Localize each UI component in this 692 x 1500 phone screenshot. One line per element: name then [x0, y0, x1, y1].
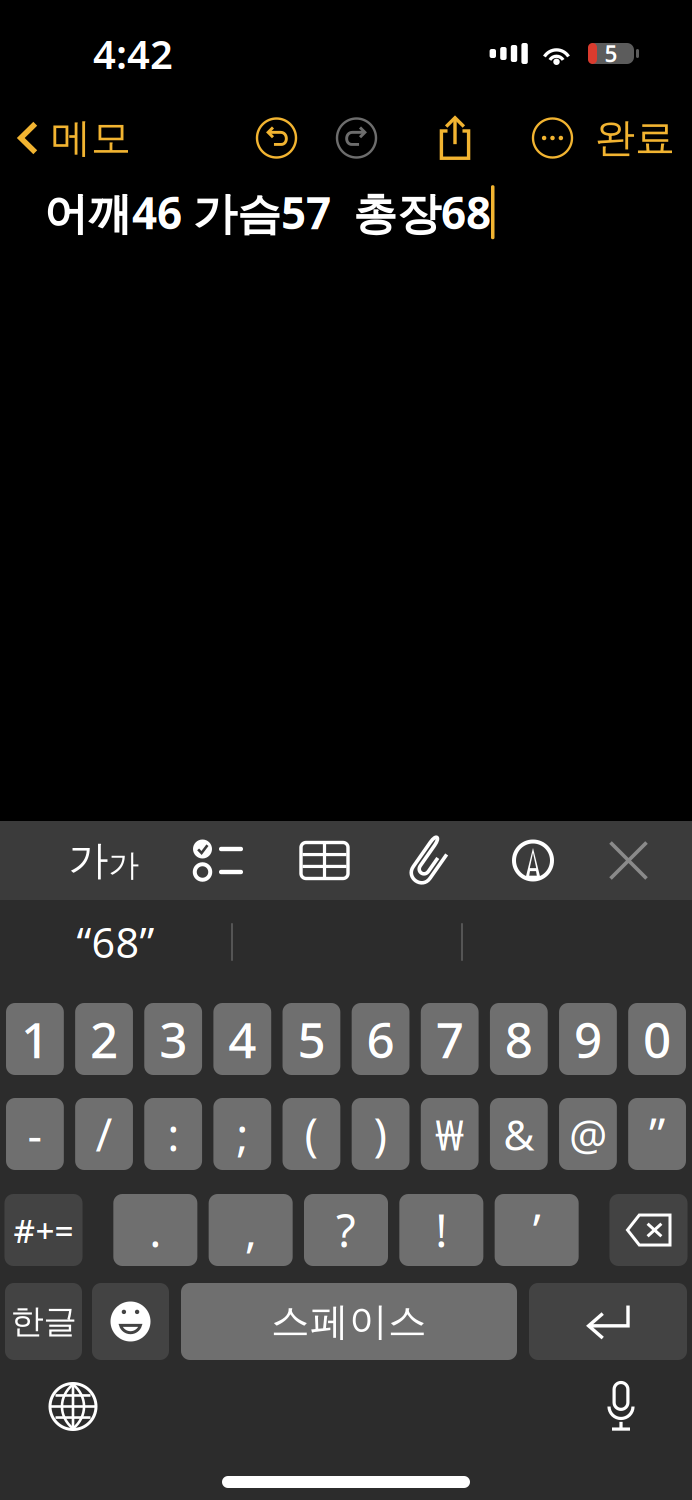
- staticText: 완료: [595, 113, 675, 162]
- button[interactable]: ’: [495, 1194, 579, 1266]
- staticText: 2: [90, 1006, 118, 1072]
- button[interactable]: @: [559, 1098, 617, 1170]
- button[interactable]: 한글: [5, 1283, 82, 1360]
- staticText: -: [27, 1104, 42, 1164]
- button[interactable]: 1: [6, 1003, 64, 1075]
- staticText: 1: [21, 1006, 49, 1072]
- staticText: 7: [436, 1006, 464, 1072]
- button[interactable]: &: [490, 1098, 548, 1170]
- button[interactable]: ,: [209, 1194, 293, 1266]
- staticText: 6: [367, 1006, 395, 1072]
- button[interactable]: .: [113, 1194, 197, 1266]
- button[interactable]: :: [144, 1098, 202, 1170]
- button[interactable]: Redo: [313, 101, 399, 175]
- button[interactable]: Undo: [239, 101, 313, 175]
- staticText: 0: [643, 1006, 671, 1072]
- button[interactable]: Share: [399, 101, 510, 175]
- staticText: 가가: [68, 836, 139, 885]
- staticText: ’: [533, 1200, 541, 1260]
- button[interactable]: ”: [628, 1098, 686, 1170]
- staticText: &: [503, 1106, 534, 1162]
- button[interactable]: Markup: [498, 821, 568, 900]
- staticText: 메모: [51, 113, 131, 162]
- button[interactable]: “68”: [0, 902, 231, 982]
- staticText: 한글: [10, 1301, 76, 1342]
- button[interactable]: /: [75, 1098, 133, 1170]
- button[interactable]: 완료: [594, 101, 675, 175]
- button[interactable]: 5: [282, 1003, 340, 1075]
- staticText: 5: [297, 1006, 325, 1072]
- staticText: ,: [245, 1200, 257, 1260]
- button[interactable]: (: [282, 1098, 340, 1170]
- button[interactable]: [92, 1283, 169, 1360]
- button[interactable]: [529, 1283, 687, 1360]
- staticText: 4: [228, 1006, 256, 1072]
- button[interactable]: -: [6, 1098, 64, 1170]
- button[interactable]: 스페이스: [181, 1283, 517, 1360]
- staticText: ”: [649, 1104, 665, 1164]
- button[interactable]: Checklist: [149, 821, 287, 900]
- button[interactable]: Hide keyboard: [568, 821, 689, 900]
- staticText: :: [167, 1104, 179, 1164]
- staticText: 9: [574, 1006, 602, 1072]
- staticText: 3: [159, 1006, 187, 1072]
- staticText: 4:42: [93, 27, 173, 80]
- staticText: .: [149, 1200, 161, 1260]
- staticText: (: [304, 1104, 318, 1164]
- staticText: “68”: [76, 915, 154, 969]
- staticText: /: [95, 1104, 112, 1164]
- staticText: ?: [336, 1200, 356, 1260]
- button[interactable]: [609, 1194, 687, 1266]
- button[interactable]: 0: [628, 1003, 686, 1075]
- button[interactable]: 2: [75, 1003, 133, 1075]
- staticText: 8: [505, 1006, 533, 1072]
- button[interactable]: 가가: [59, 821, 149, 900]
- button[interactable]: ): [352, 1098, 409, 1170]
- button[interactable]: 6: [352, 1003, 409, 1075]
- staticText: !: [435, 1200, 447, 1260]
- button[interactable]: 8: [490, 1003, 548, 1075]
- button[interactable]: Attach file: [362, 821, 498, 900]
- button[interactable]: !: [399, 1194, 483, 1266]
- button[interactable]: 4: [213, 1003, 271, 1075]
- staticText: 스페이스: [271, 1298, 427, 1345]
- staticText: 어깨46 가슴57 총장68: [44, 183, 491, 241]
- button[interactable]: Table: [287, 821, 362, 900]
- staticText: ;: [236, 1104, 248, 1164]
- staticText: #+=: [13, 1208, 73, 1252]
- button[interactable]: 메모: [0, 105, 131, 170]
- staticText: ): [374, 1104, 388, 1164]
- button[interactable]: Dictation: [606, 1382, 636, 1430]
- button[interactable]: More options: [510, 101, 594, 175]
- button[interactable]: 3: [144, 1003, 202, 1075]
- button[interactable]: 9: [559, 1003, 617, 1075]
- staticText: 5: [604, 38, 617, 68]
- staticText: ₩: [435, 1106, 464, 1162]
- button[interactable]: ?: [304, 1194, 388, 1266]
- button[interactable]: ₩: [421, 1098, 479, 1170]
- button[interactable]: Change keyboard: [50, 1383, 96, 1429]
- button[interactable]: ;: [213, 1098, 271, 1170]
- button[interactable]: #+=: [4, 1194, 82, 1266]
- staticText: @: [569, 1106, 607, 1162]
- button[interactable]: 7: [421, 1003, 479, 1075]
